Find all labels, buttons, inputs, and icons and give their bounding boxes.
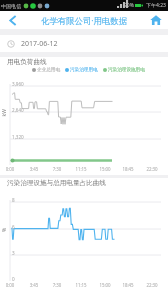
staticText: 3:45 (25, 166, 43, 172)
staticText: 3 (12, 250, 15, 256)
staticText: 污染治理设施用电 (108, 67, 145, 73)
staticText: 用电负荷曲线 (7, 58, 47, 66)
staticText: 2017-06-12 (21, 39, 58, 49)
staticText: 22:30 (143, 282, 161, 288)
staticText: 15:00 (96, 282, 114, 288)
staticText: 90% (124, 2, 134, 9)
staticText: 下午4:23 (146, 2, 166, 9)
staticText: 2,640 (12, 107, 24, 113)
staticText: 8 (12, 197, 15, 203)
staticText: 化学有限公司·用电数据 (41, 15, 128, 26)
staticText: 企业总用电 (37, 67, 60, 73)
staticText: 中国电信 (1, 3, 21, 9)
button[interactable]: Back (0, 11, 24, 29)
staticText: kW (0, 108, 7, 116)
staticText: 15:00 (96, 166, 114, 172)
staticText: 7:30 (48, 166, 66, 172)
staticText: 0:00 (1, 282, 19, 288)
staticText: 18:45 (119, 166, 137, 172)
button[interactable]: 污染治理设施用电 (103, 67, 145, 73)
staticText: 3,960 (12, 81, 24, 87)
staticText: 3:45 (25, 282, 43, 288)
staticText: 污染治理用电 (70, 67, 98, 73)
staticText: 1,320 (12, 134, 24, 140)
button[interactable]: 2017-06-12 (0, 35, 168, 52)
staticText: 污染治理设施与总用电量占比曲线 (7, 179, 106, 187)
staticText: 0 (12, 276, 15, 282)
staticText: 11:15 (72, 282, 90, 288)
button[interactable]: 企业总用电 (32, 67, 60, 73)
staticText: 18:45 (119, 282, 137, 288)
button[interactable]: 污染治理用电 (65, 67, 98, 73)
button[interactable]: Home (144, 11, 168, 29)
staticText: 6 (12, 224, 15, 230)
staticText: 11:15 (72, 166, 90, 172)
staticText: 7:30 (48, 282, 66, 288)
staticText: % (1, 227, 8, 232)
staticText: 22:30 (143, 166, 161, 172)
staticText: 0:00 (1, 166, 19, 172)
